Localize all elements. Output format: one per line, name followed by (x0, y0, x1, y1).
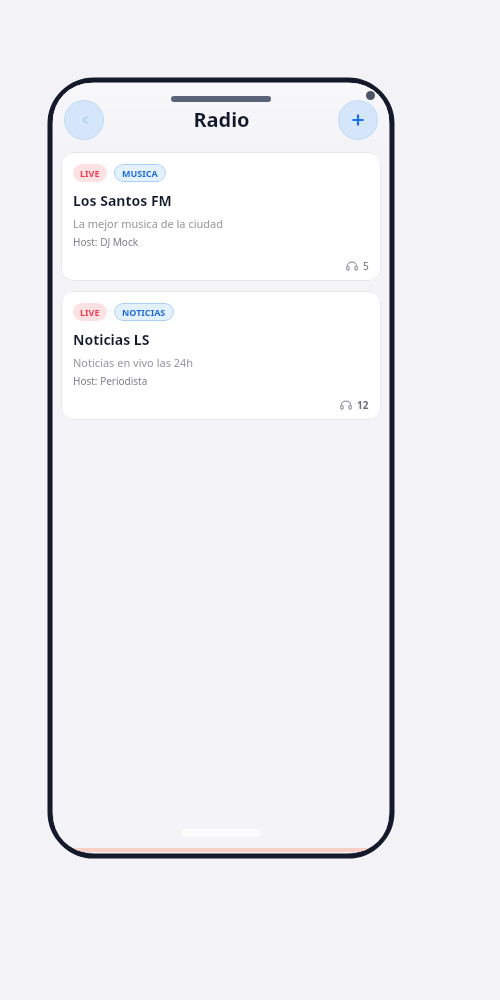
staticText: Noticias en vivo las 24h (73, 355, 194, 370)
staticText: Host: DJ Mock (73, 235, 139, 249)
staticText: LIVE (80, 167, 100, 179)
button[interactable]: LIVE (61, 291, 381, 420)
staticText: NOTICIAS (122, 306, 166, 318)
staticText: Radio (193, 106, 250, 133)
staticText: MUSICA (122, 167, 158, 179)
staticText: La mejor musica de la ciudad (73, 216, 223, 231)
button[interactable]: LIVE (61, 152, 381, 281)
staticText: LIVE (80, 306, 100, 318)
staticText: 12 (357, 398, 369, 412)
staticText: 5 (363, 259, 369, 273)
button[interactable]: Back (64, 100, 104, 140)
button[interactable]: Add station (338, 100, 378, 140)
staticText: Los Santos FM (73, 191, 172, 210)
staticText: Host: Periodista (73, 374, 148, 388)
staticText: Noticias LS (73, 330, 150, 349)
